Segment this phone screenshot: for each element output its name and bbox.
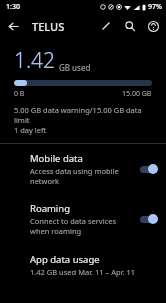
staticText: TELUS: [32, 19, 65, 34]
staticText: 0 B: [14, 89, 25, 99]
staticText: 1:30: [6, 2, 20, 12]
button[interactable]: Roaming: [0, 194, 166, 244]
staticText: 5.00 GB data warning/15.00 GB data limit: [14, 105, 152, 125]
button[interactable]: Back: [0, 13, 26, 39]
button[interactable]: Help: [142, 14, 164, 38]
button[interactable]: Mobile data: [0, 144, 166, 194]
staticText: GB used: [59, 62, 91, 73]
staticText: 97%: [148, 2, 162, 12]
button[interactable]: App data usage: [0, 244, 166, 286]
button[interactable]: Roaming toggle: [138, 213, 158, 225]
staticText: 15.00 GB: [122, 89, 152, 99]
button[interactable]: Mobile data toggle: [138, 163, 158, 175]
staticText: 1 day left: [14, 125, 47, 135]
staticText: Mobile data: [30, 152, 83, 165]
staticText: Roaming: [30, 202, 71, 215]
staticText: Connect to data services when roaming: [30, 216, 132, 236]
staticText: 1.42: [14, 46, 56, 75]
staticText: App data usage: [30, 253, 100, 266]
button[interactable]: Search: [118, 14, 142, 38]
button[interactable]: Edit: [94, 14, 118, 38]
staticText: Access data using mobile network: [30, 166, 132, 186]
staticText: 1.42 GB used Mar. 11 – Apr. 11: [30, 267, 136, 277]
